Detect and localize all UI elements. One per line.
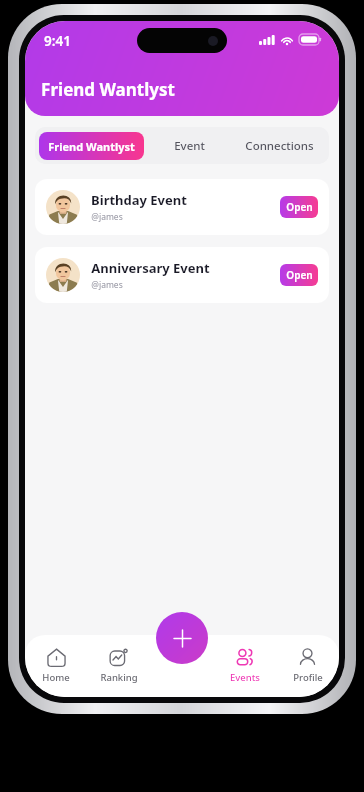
button[interactable]: Friend Wantlyst [39,132,144,160]
button[interactable]: Open [280,196,318,218]
staticText: Anniversary Event [91,259,210,277]
staticText: Open [286,268,313,282]
button[interactable]: Ranking [87,635,150,697]
staticText: 9:41 [44,32,71,50]
button[interactable]: Profile [276,635,339,697]
button[interactable]: Birthday Event [35,179,329,235]
staticText: Events [230,671,260,684]
staticText: Profile [293,671,323,684]
staticText: @james [91,211,123,223]
staticText: Friend Wantlyst [48,139,135,154]
button[interactable]: Events [213,635,276,697]
button[interactable]: Event [144,127,234,164]
button[interactable]: Anniversary Event [35,247,329,303]
staticText: Open [286,200,313,214]
button[interactable]: Open [280,264,318,286]
staticText: Home [42,671,70,684]
staticText: Friend Wantlyst [41,78,175,101]
button[interactable]: Add [156,612,208,664]
staticText: Connections [245,138,314,154]
staticText: @james [91,279,123,291]
button[interactable]: Home [25,635,87,697]
staticText: Birthday Event [91,191,187,209]
button[interactable]: Connections [234,127,325,164]
staticText: Event [174,138,205,154]
staticText: Ranking [100,671,138,684]
